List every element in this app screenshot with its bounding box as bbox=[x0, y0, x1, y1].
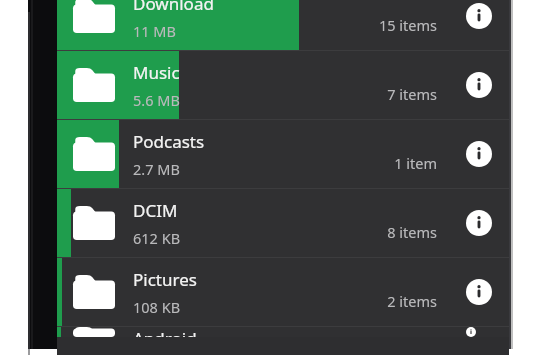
staticText: 7 items bbox=[387, 84, 437, 104]
staticText: Music bbox=[133, 61, 180, 84]
staticText: 2.7 MB bbox=[133, 159, 180, 179]
staticText: 11 MB bbox=[133, 21, 176, 41]
button[interactable]: Info about Podcasts bbox=[459, 134, 499, 174]
button[interactable]: Info about Android bbox=[459, 327, 499, 337]
button[interactable]: Info about Download bbox=[459, 0, 499, 36]
button[interactable]: Music bbox=[57, 51, 509, 119]
button[interactable]: Pictures bbox=[57, 258, 509, 326]
staticText: 108 KB bbox=[133, 297, 181, 317]
staticText: 612 KB bbox=[133, 228, 181, 248]
staticText: 15 items bbox=[378, 15, 437, 35]
staticText: Android bbox=[133, 327, 197, 337]
button[interactable]: Info about Music bbox=[459, 65, 499, 105]
button[interactable]: Info about DCIM bbox=[459, 203, 499, 243]
staticText: 5.6 MB bbox=[133, 90, 180, 110]
staticText: Podcasts bbox=[133, 130, 205, 153]
staticText: 2 items bbox=[387, 291, 437, 311]
button[interactable]: Podcasts bbox=[57, 120, 509, 188]
button[interactable]: Android bbox=[57, 327, 509, 337]
button[interactable]: DCIM bbox=[57, 189, 509, 257]
staticText: Pictures bbox=[133, 268, 197, 291]
staticText: Download bbox=[133, 0, 214, 15]
staticText: 1 item bbox=[394, 153, 437, 173]
staticText: 8 items bbox=[387, 222, 437, 242]
staticText: DCIM bbox=[133, 199, 178, 222]
button[interactable]: Info about Pictures bbox=[459, 272, 499, 312]
button[interactable]: Download bbox=[57, 0, 509, 50]
